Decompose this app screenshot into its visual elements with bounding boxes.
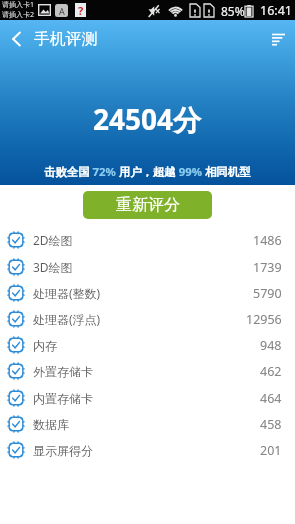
staticText: 1739 bbox=[253, 259, 282, 276]
button[interactable]: 数据库 bbox=[7, 411, 282, 437]
button[interactable]: 处理器(整数) bbox=[7, 280, 282, 306]
button[interactable]: Back bbox=[0, 22, 34, 56]
button[interactable]: Sort bbox=[261, 22, 295, 56]
staticText: 464 bbox=[260, 390, 282, 407]
staticText: 手机评测 bbox=[34, 29, 98, 49]
button[interactable]: 处理器(浮点) bbox=[7, 306, 282, 332]
staticText: 重新评分 bbox=[116, 195, 180, 215]
staticText: 请插入卡2 bbox=[2, 10, 35, 20]
button[interactable]: 2D绘图 bbox=[7, 227, 282, 253]
staticText: 1486 bbox=[253, 232, 282, 249]
staticText: 3D绘图 bbox=[33, 259, 73, 275]
staticText: 数据库 bbox=[33, 417, 69, 432]
staticText: 请插入卡1 bbox=[2, 0, 35, 10]
staticText: 外置存储卡 bbox=[33, 364, 93, 379]
staticText: 处理器(整数) bbox=[33, 285, 101, 301]
staticText: 内置存储卡 bbox=[33, 391, 93, 406]
staticText: 24504分 bbox=[93, 100, 202, 138]
staticText: A bbox=[59, 5, 65, 17]
staticText: 12956 bbox=[246, 311, 282, 328]
staticText: 462 bbox=[260, 363, 282, 380]
staticText: 85% bbox=[221, 3, 245, 19]
staticText: 2D绘图 bbox=[33, 232, 73, 248]
staticText: 948 bbox=[260, 337, 282, 354]
button[interactable]: 内置存储卡 bbox=[7, 385, 282, 411]
button[interactable]: 显示屏得分 bbox=[7, 437, 282, 463]
staticText: 处理器(浮点) bbox=[33, 311, 101, 327]
staticText: 5790 bbox=[253, 285, 282, 302]
button[interactable]: 3D绘图 bbox=[7, 254, 282, 280]
staticText: ? bbox=[78, 3, 84, 17]
staticText: 显示屏得分 bbox=[33, 443, 93, 458]
button[interactable]: 重新评分 bbox=[83, 191, 212, 219]
staticText: 击败全国 72% 用户，超越 99% 相同机型 bbox=[44, 164, 251, 180]
staticText: 201 bbox=[260, 442, 282, 459]
button[interactable]: 内存 bbox=[7, 332, 282, 358]
button[interactable]: 外置存储卡 bbox=[7, 358, 282, 384]
staticText: 458 bbox=[260, 416, 282, 433]
staticText: 内存 bbox=[33, 338, 57, 353]
staticText: 16:41 bbox=[260, 2, 292, 19]
